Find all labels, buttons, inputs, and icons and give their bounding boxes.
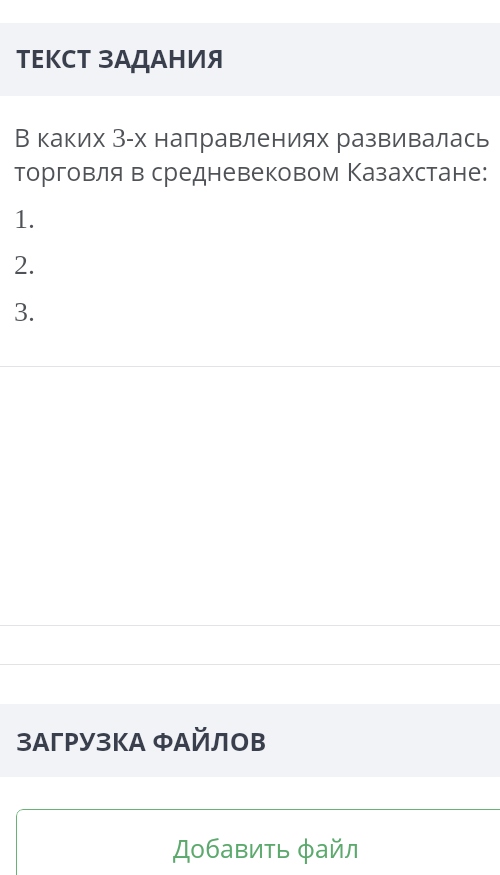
- staticText: В каких 3-х направлениях развивалась тор…: [14, 120, 491, 188]
- staticText: ЗАГРУЗКА ФАЙЛОВ: [16, 724, 267, 758]
- staticText: 3.: [14, 296, 35, 327]
- button[interactable]: Добавить файл: [16, 809, 500, 875]
- staticText: 2.: [14, 249, 35, 280]
- button[interactable]: ЗАГРУЗКА ФАЙЛОВ: [0, 704, 500, 777]
- button[interactable]: ТЕКСТ ЗАДАНИЯ: [0, 23, 500, 96]
- staticText: ТЕКСТ ЗАДАНИЯ: [16, 41, 224, 75]
- staticText: 1.: [14, 203, 35, 234]
- staticText: Добавить файл: [173, 831, 359, 865]
- button[interactable]: 2.: [14, 249, 484, 293]
- button[interactable]: 3.: [14, 296, 484, 340]
- button[interactable]: 1.: [14, 203, 484, 247]
